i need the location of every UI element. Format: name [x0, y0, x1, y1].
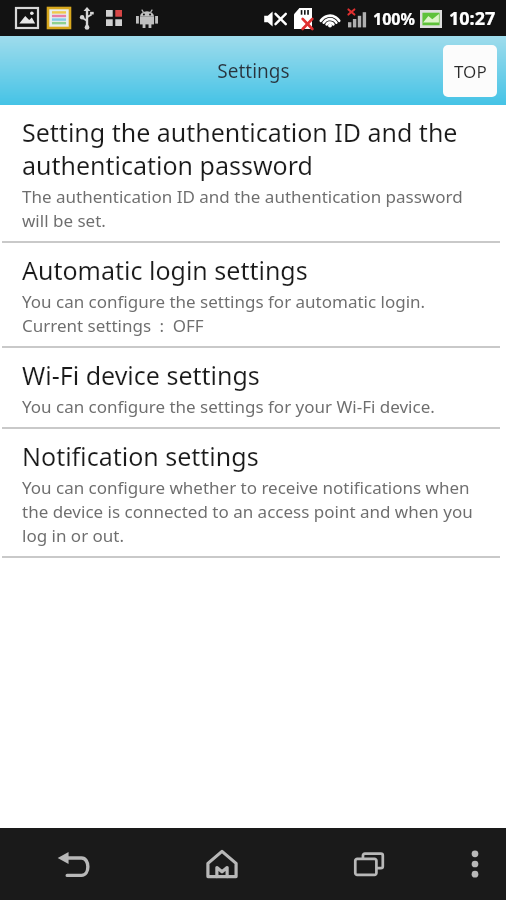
- button[interactable]: Back: [0, 828, 148, 900]
- button[interactable]: Automatic login settings: [0, 243, 506, 346]
- button[interactable]: TOP: [443, 45, 497, 97]
- staticText: You can configure the settings for autom…: [22, 290, 426, 337]
- button[interactable]: Wi-Fi device settings: [0, 348, 506, 427]
- staticText: Wi-Fi device settings: [22, 358, 260, 392]
- staticText: Settings: [217, 58, 290, 84]
- staticText: Setting the authentication ID and the au…: [22, 115, 492, 182]
- staticText: Automatic login settings: [22, 253, 308, 287]
- staticText: 10:27: [449, 6, 496, 31]
- staticText: You can configure the settings for your …: [22, 395, 435, 418]
- staticText: Notification settings: [22, 439, 259, 473]
- staticText: 100%: [373, 8, 415, 30]
- staticText: You can configure whether to receive not…: [22, 476, 492, 547]
- staticText: TOP: [454, 60, 487, 83]
- staticText: The authentication ID and the authentica…: [22, 185, 492, 232]
- button[interactable]: Recent apps: [296, 828, 444, 900]
- button[interactable]: Notification settings: [0, 429, 506, 556]
- button[interactable]: Home: [148, 828, 296, 900]
- button[interactable]: More options: [444, 828, 506, 900]
- button[interactable]: Setting the authentication ID and the au…: [0, 105, 506, 241]
